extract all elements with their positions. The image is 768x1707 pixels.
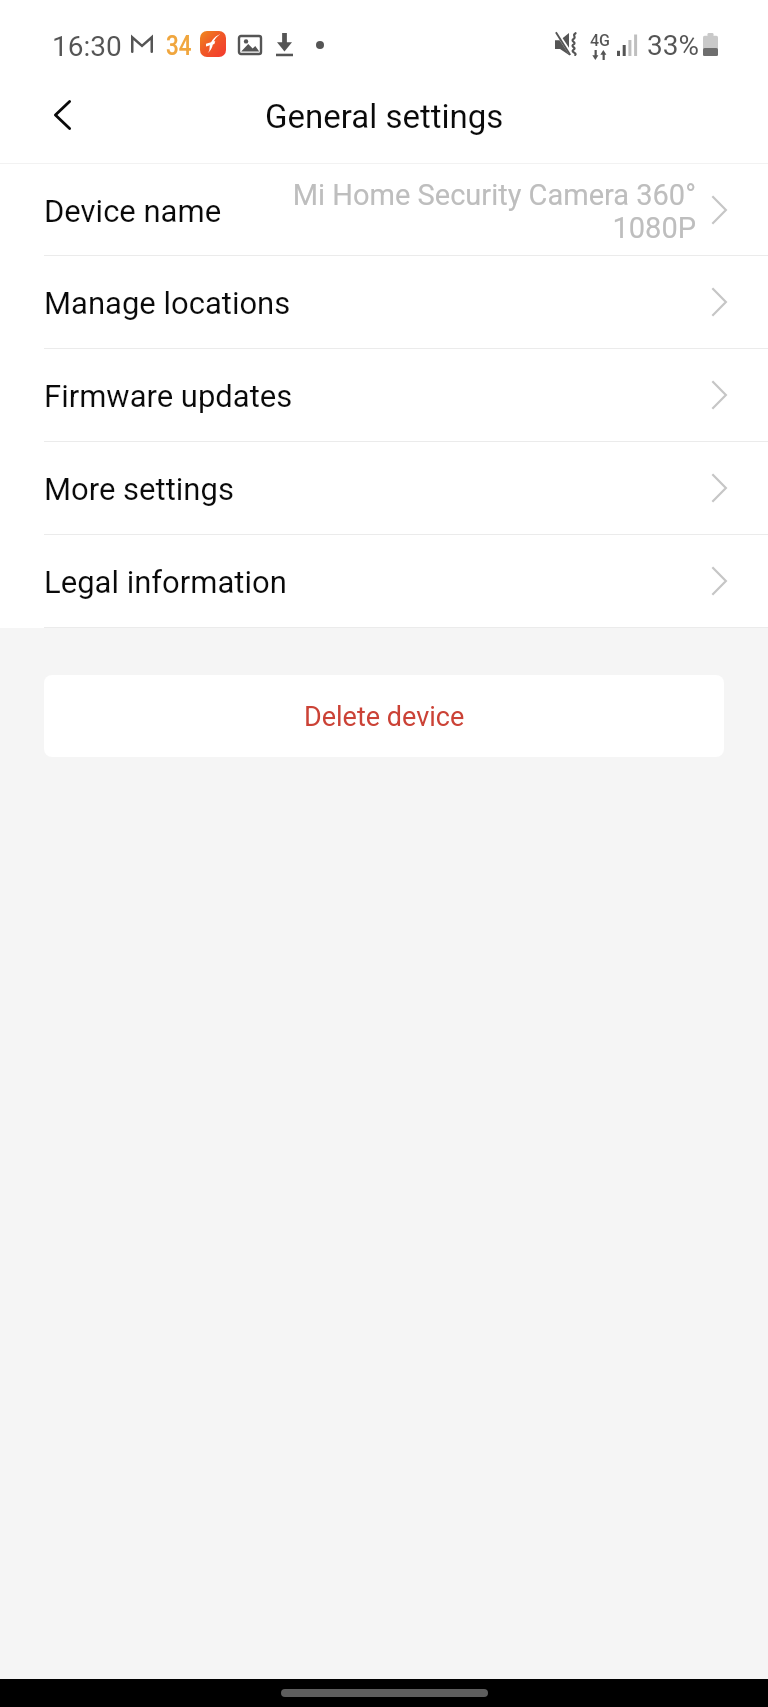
button[interactable]: Delete device <box>44 675 724 757</box>
staticText: General settings <box>265 97 504 136</box>
button[interactable]: Device name <box>0 164 768 255</box>
staticText: 16:30 <box>52 30 122 63</box>
button[interactable]: Back <box>34 87 90 143</box>
button[interactable]: Legal information <box>0 535 768 627</box>
button[interactable]: Firmware updates <box>0 349 768 441</box>
staticText: Delete device <box>304 701 465 733</box>
staticText: 34 <box>166 30 192 62</box>
staticText: Mi Home Security Camera 360° 1080P <box>276 178 696 245</box>
staticText: Manage locations <box>44 285 291 321</box>
staticText: Legal information <box>44 564 287 600</box>
staticText: Device name <box>44 193 222 229</box>
button[interactable]: Manage locations <box>0 256 768 348</box>
staticText: 33% <box>647 29 699 62</box>
button[interactable]: More settings <box>0 442 768 534</box>
staticText: More settings <box>44 471 234 507</box>
staticText: 4G <box>590 31 610 50</box>
staticText: Firmware updates <box>44 378 293 414</box>
